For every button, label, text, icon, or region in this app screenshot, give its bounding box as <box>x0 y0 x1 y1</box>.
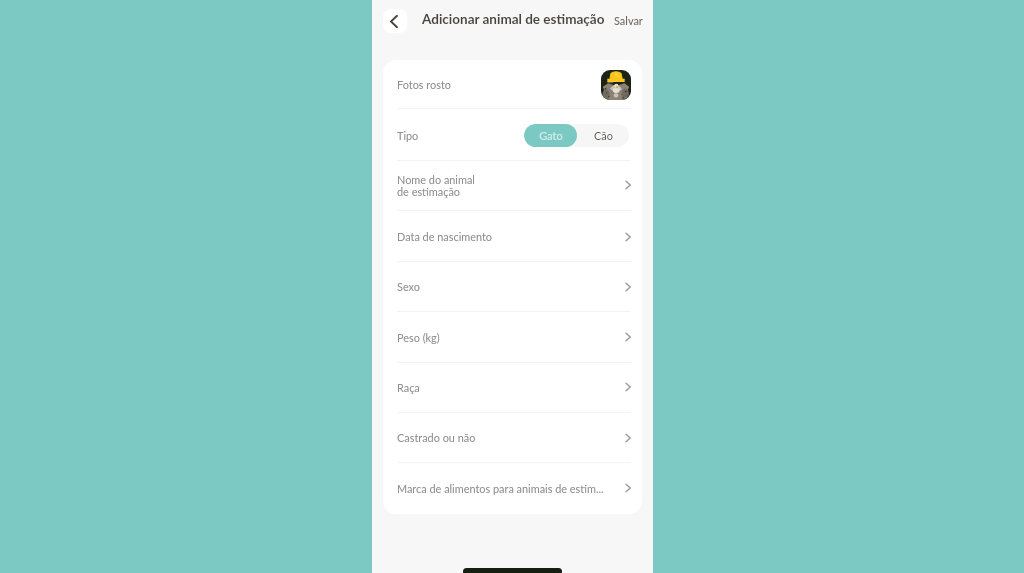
button[interactable]: Nome do animal de estimação <box>383 160 642 210</box>
button[interactable]: Salvar <box>614 14 643 27</box>
button[interactable]: Peso (kg) <box>383 312 642 362</box>
staticText: Tipo <box>397 129 419 142</box>
staticText: Gato <box>539 129 563 142</box>
button[interactable]: Fotos rosto <box>383 60 642 109</box>
staticText: Sexo <box>397 280 420 293</box>
staticText: Peso (kg) <box>397 331 440 344</box>
staticText: Nome do animal de estimação <box>397 173 475 198</box>
staticText: Marca de alimentos para animais de estim… <box>397 482 604 495</box>
button[interactable]: Marca de alimentos para animais de estim… <box>383 463 642 513</box>
button[interactable]: Data de nascimento <box>383 211 642 262</box>
button[interactable]: Cão <box>577 124 629 147</box>
staticText: Fotos rosto <box>397 78 451 91</box>
staticText: Adicionar animal de estimação <box>422 11 605 27</box>
button[interactable]: Castrado ou não <box>383 412 642 463</box>
staticText: Castrado ou não <box>397 431 476 444</box>
button[interactable]: Sexo <box>383 261 642 312</box>
button[interactable]: Tipo <box>383 109 642 161</box>
button[interactable]: Gato <box>524 124 577 147</box>
staticText: Cão <box>594 129 613 142</box>
button[interactable]: Raça <box>383 362 642 412</box>
button[interactable]: Back <box>383 9 407 33</box>
staticText: Raça <box>397 381 420 394</box>
button[interactable]: Pet photo <box>601 70 631 100</box>
staticText: Data de nascimento <box>397 230 493 243</box>
